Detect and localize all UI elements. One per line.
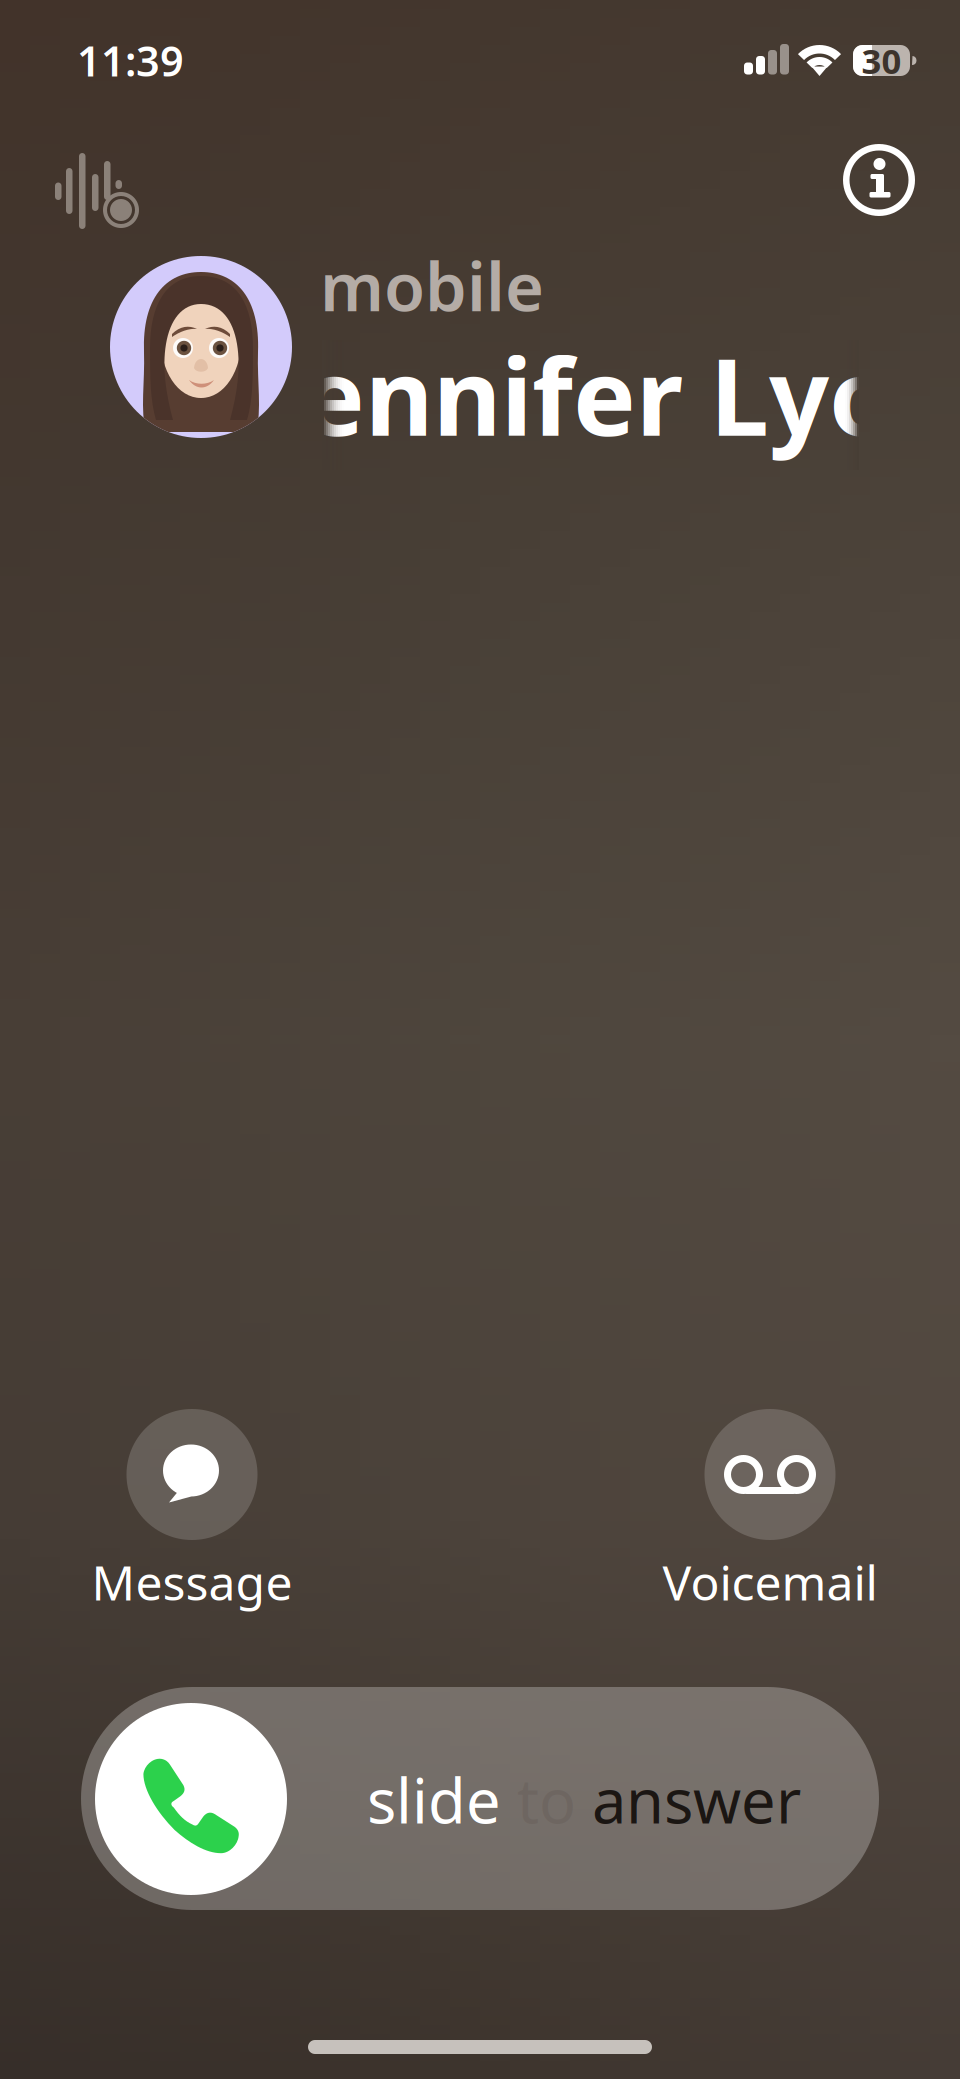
staticText: Jennifer Lyons [267,325,960,465]
button[interactable]: Call info [827,128,931,232]
button[interactable]: slide [81,1687,879,1910]
button[interactable]: Message [32,1409,352,1621]
staticText: 30 [861,37,901,83]
staticText: mobile [320,241,544,329]
staticText: slide [367,1759,501,1840]
staticText: Message [91,1550,292,1614]
staticText: 11:39 [77,33,184,88]
staticText: answer [592,1759,801,1840]
staticText: Voicemail [662,1550,877,1614]
button[interactable]: Voicemail [610,1409,930,1621]
